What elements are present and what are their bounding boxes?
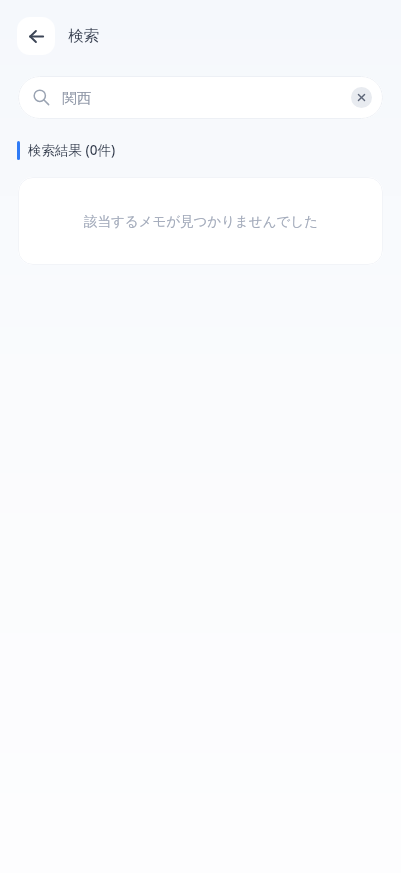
staticText: 関西 [62, 89, 351, 107]
button[interactable]: 関西 [18, 76, 383, 119]
button[interactable]: Clear search [351, 87, 372, 108]
button[interactable]: 該当するメモが見つかりませんでした [18, 177, 383, 265]
staticText: 検索 [68, 26, 99, 46]
staticText: 該当するメモが見つかりませんでした [84, 213, 318, 230]
button[interactable]: Back [17, 17, 55, 55]
staticText: 検索結果 (0件) [28, 141, 116, 159]
